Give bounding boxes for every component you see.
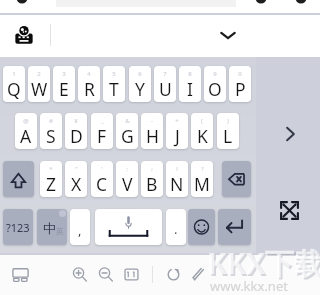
button[interactable]: 2 [28,66,50,102]
staticText: KKX下载 [207,243,320,283]
staticText: 8 [188,70,192,78]
staticText: 中 [43,220,56,236]
button[interactable]: Hide keyboard [216,23,240,47]
button[interactable]: ) [217,113,239,149]
button[interactable]: 4 [78,66,100,102]
button[interactable]: Edit [189,265,208,284]
staticText: & [125,117,130,125]
staticText: - [151,117,153,125]
staticText: W [31,77,48,101]
staticText: ' [101,165,103,173]
staticText: V [122,172,133,196]
staticText: # [49,117,53,125]
staticText: ( [201,117,203,125]
staticText: . [174,220,178,238]
staticText: 5 [112,70,116,78]
button[interactable]: Presentation mode [11,265,30,284]
button[interactable]: , [70,209,90,245]
button[interactable]: 7 [154,66,176,102]
staticText: @ [23,117,29,125]
button[interactable]: ! [166,161,188,197]
button[interactable]: _ [91,113,113,149]
staticText: R [84,77,95,101]
button[interactable]: Actual size [122,265,141,284]
staticText: KKX下载 [209,245,320,285]
button[interactable]: " [65,161,87,197]
staticText: 0 [238,70,242,78]
staticText: ?123 [6,220,30,235]
button[interactable]: Next [278,122,302,146]
staticText: G [121,124,134,148]
button[interactable]: * [40,161,62,197]
button[interactable]: 3 [53,66,75,102]
staticText: A [20,124,32,148]
staticText: F [97,124,107,148]
button[interactable]: Enter [218,209,251,245]
staticText: P [235,77,246,101]
staticText: ? [201,165,204,173]
button[interactable]: + [166,113,188,149]
button[interactable]: . [166,209,186,245]
staticText: ; [151,165,153,173]
staticText: J [175,124,180,148]
staticText: Q [7,77,21,101]
staticText: 3 [62,70,66,78]
button[interactable]: ? [191,161,213,197]
staticText: * [49,165,53,173]
staticText: I [187,77,193,101]
button[interactable]: Space [95,209,162,245]
staticText: U [159,77,172,101]
staticText: S [46,124,56,148]
button[interactable]: ( [191,113,213,149]
button[interactable]: Emoji [188,209,215,245]
button[interactable]: Switch Chinese English [37,209,67,245]
button[interactable]: Backspace [222,161,251,197]
button[interactable]: Shift [3,161,34,197]
button[interactable]: 6 [129,66,151,102]
staticText: M [194,172,210,196]
staticText: 4 [87,70,91,78]
button[interactable]: Resize keyboard [279,200,300,221]
button[interactable]: 8 [179,66,201,102]
button[interactable]: 0 [229,66,251,102]
button[interactable]: ' [91,161,113,197]
staticText: K [197,124,208,148]
staticText: O [208,77,222,101]
staticText: " [75,165,78,173]
staticText: N [170,172,184,196]
staticText: www.kkx.net [210,277,288,295]
staticText: T [109,77,119,101]
staticText: X [71,172,82,196]
staticText: ! [176,165,178,173]
staticText: B [146,172,158,196]
staticText: ¥ [74,117,78,125]
staticText: 英 [56,226,64,236]
staticText: 2 [37,70,41,78]
button[interactable]: 5 [103,66,125,102]
button[interactable]: - [141,113,163,149]
staticText: , [78,221,82,239]
button[interactable]: Symbols [3,209,33,245]
staticText: 6 [138,70,142,78]
button[interactable]: : [116,161,138,197]
staticText: 9 [213,70,217,78]
button[interactable]: 1 [3,66,25,102]
staticText: L [223,124,233,148]
button[interactable]: # [40,113,62,149]
button[interactable]: 9 [204,66,226,102]
staticText: 1 [12,70,16,78]
staticText: Y [135,77,145,101]
button[interactable]: Zoom in [70,265,89,284]
button[interactable]: @ [15,113,37,149]
button[interactable]: & [116,113,138,149]
staticText: E [59,77,69,101]
button[interactable]: Switch input language [15,26,33,44]
button[interactable]: ¥ [65,113,87,149]
staticText: + [175,117,179,125]
staticText: 7 [163,70,167,78]
staticText: C [96,172,108,196]
button[interactable]: Rotate [164,265,183,284]
staticText: : [126,165,128,173]
button[interactable]: Zoom out [96,265,115,284]
button[interactable]: ; [141,161,163,197]
